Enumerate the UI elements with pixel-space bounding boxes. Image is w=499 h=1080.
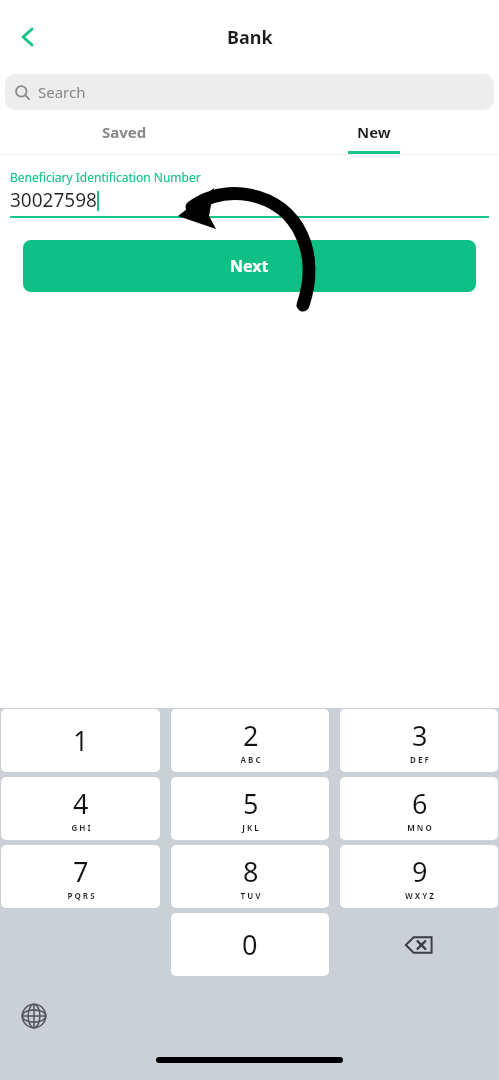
staticText: T U V	[240, 890, 261, 901]
staticText: Saved	[102, 122, 147, 142]
staticText: D E F	[410, 754, 429, 765]
button[interactable]: 0	[171, 913, 329, 976]
staticText: 5	[243, 785, 259, 822]
button[interactable]: 6	[340, 777, 498, 840]
button[interactable]: Back	[4, 13, 52, 61]
button[interactable]: 1	[1, 709, 160, 772]
staticText: Beneficiary Identification Number	[10, 169, 201, 185]
staticText: 0	[242, 926, 258, 963]
button[interactable]: Saved	[0, 110, 249, 154]
staticText: J K L	[242, 822, 259, 833]
staticText: Search	[38, 82, 86, 102]
button[interactable]: 7	[1, 845, 160, 908]
button[interactable]: 9	[340, 845, 498, 908]
button[interactable]: 3	[340, 709, 498, 772]
staticText: Next	[230, 255, 269, 277]
staticText: 8	[243, 853, 259, 890]
staticText: A B C	[240, 754, 261, 765]
button[interactable]: 8	[171, 845, 329, 908]
button[interactable]: 2	[171, 709, 329, 772]
staticText: 2	[243, 717, 259, 754]
staticText: New	[357, 122, 391, 142]
staticText: 9	[412, 853, 428, 890]
button[interactable]: Search	[5, 74, 494, 110]
button[interactable]: 5	[171, 777, 329, 840]
button[interactable]: New	[249, 110, 499, 154]
staticText: 6	[412, 785, 428, 822]
staticText: 4	[73, 785, 89, 822]
button[interactable]: 4	[1, 777, 160, 840]
button[interactable]: Change keyboard language	[14, 996, 54, 1036]
staticText: 7	[73, 853, 89, 890]
button[interactable]: Next	[23, 240, 476, 292]
staticText: Bank	[227, 25, 273, 50]
staticText: 30027598	[10, 187, 97, 213]
button[interactable]: Backspace	[339, 913, 499, 976]
staticText: M N O	[407, 822, 432, 833]
staticText: 1	[73, 722, 89, 759]
staticText: 3	[412, 717, 428, 754]
staticText: W X Y Z	[405, 890, 434, 901]
staticText: G H I	[71, 822, 91, 833]
staticText: P Q R S	[67, 890, 95, 901]
